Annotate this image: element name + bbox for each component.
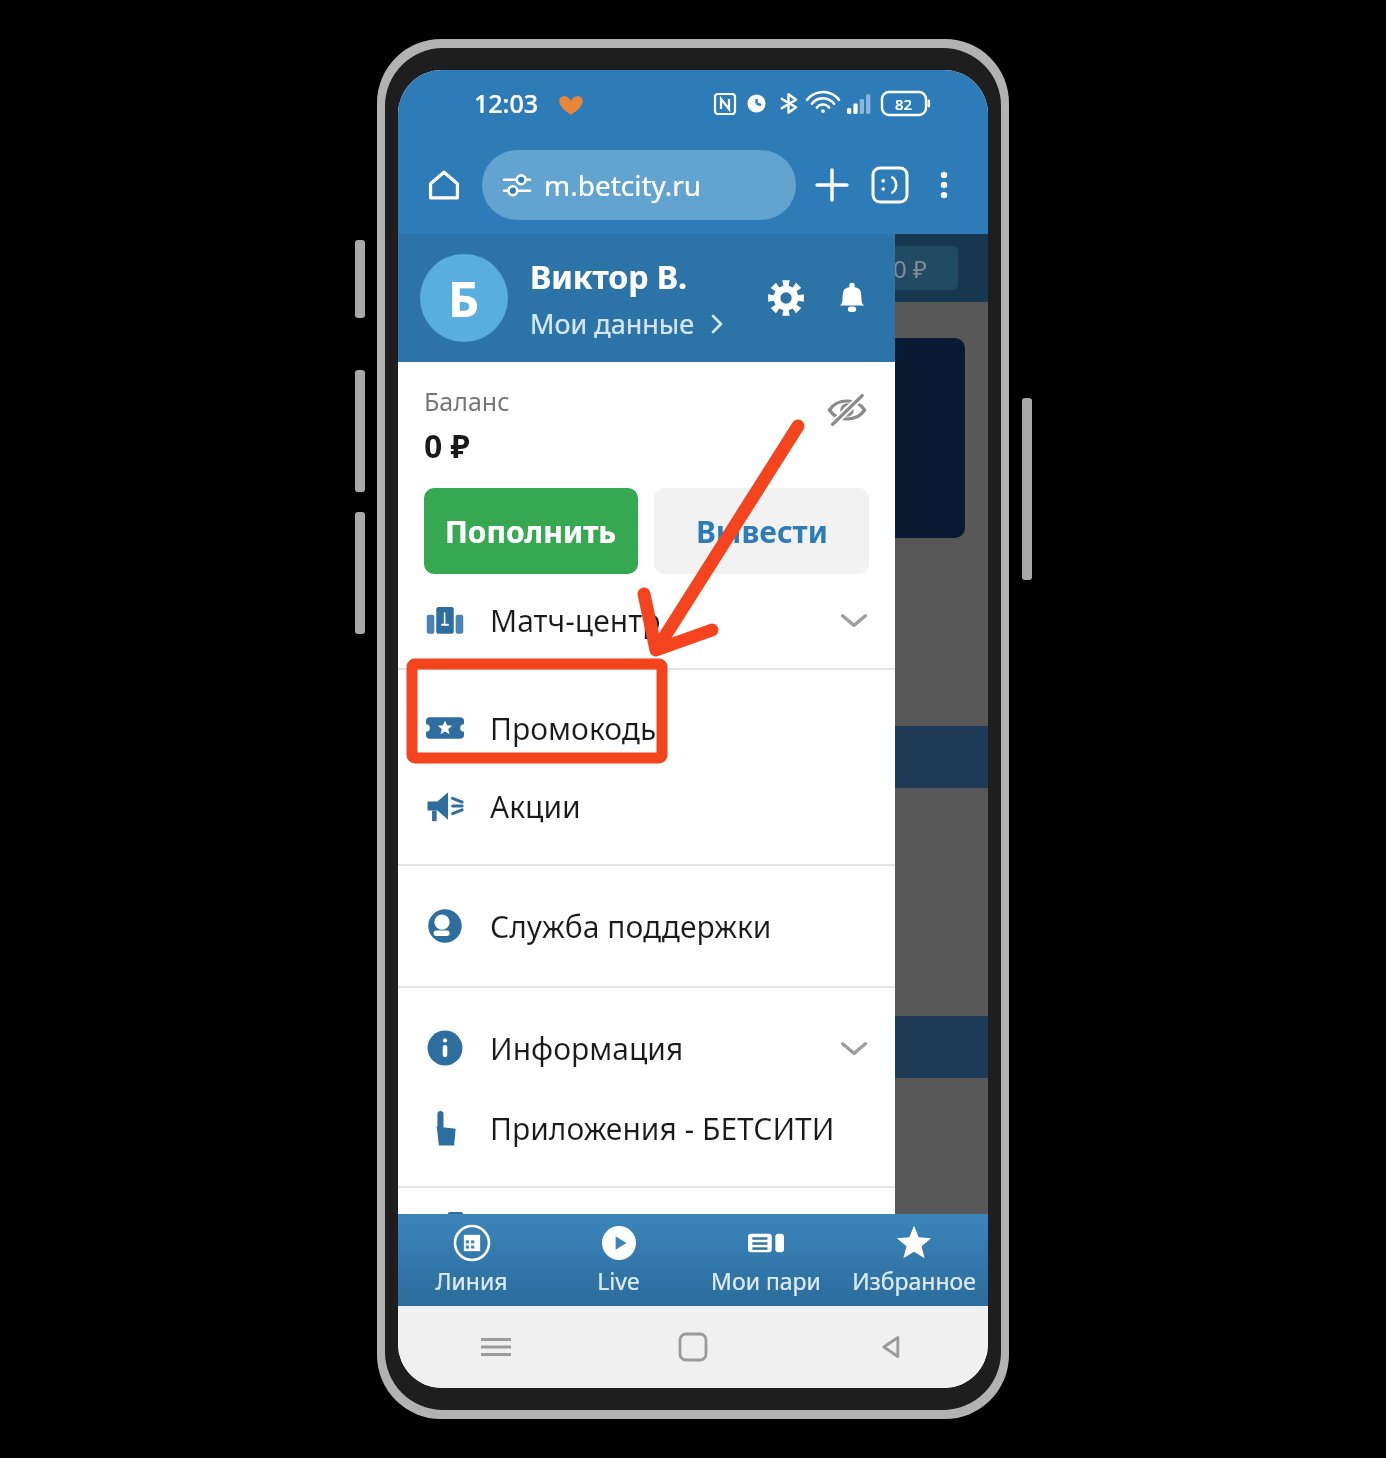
staticText: Линия	[435, 1265, 508, 1296]
button[interactable]: m.betcity.ru	[482, 150, 796, 220]
staticText: Матч-центр	[490, 600, 661, 641]
staticText: 0 ₽	[424, 424, 470, 468]
staticText: Виктор В.	[530, 255, 687, 299]
button[interactable]: Settings	[757, 269, 815, 327]
button[interactable]: Промокоды	[398, 702, 895, 754]
button[interactable]: Вывести	[654, 488, 869, 574]
staticText: Мои пари	[711, 1265, 821, 1296]
button[interactable]: Tabs	[864, 159, 916, 211]
button[interactable]: New tab	[806, 159, 858, 211]
button[interactable]: Back	[791, 1306, 988, 1388]
button[interactable]: Акции	[398, 780, 895, 832]
button[interactable]: Recents	[398, 1306, 594, 1388]
staticText: Промокоды	[490, 708, 663, 749]
staticText: 1.83	[440, 941, 496, 979]
staticText: Информация	[490, 1028, 684, 1069]
staticText: Избранное	[852, 1265, 976, 1296]
button[interactable]: Пополнить	[424, 488, 638, 574]
button[interactable]: Hide balance	[817, 380, 877, 440]
staticText: ve-пари	[404, 678, 514, 715]
staticText: 53	[452, 1241, 485, 1279]
button[interactable]: Live	[545, 1214, 692, 1306]
staticText: m.betcity.ru	[544, 166, 702, 204]
staticText: Пополнить	[445, 511, 617, 552]
button[interactable]: Информация	[398, 1022, 895, 1074]
button[interactable]: Служба поддержки	[398, 900, 895, 952]
button[interactable]: More options	[920, 161, 968, 209]
button[interactable]: Notifications	[823, 269, 881, 327]
staticText: 82	[895, 94, 913, 114]
button[interactable]: Линия	[398, 1214, 545, 1306]
button[interactable]: Б	[398, 234, 895, 362]
staticText: 0 ₽	[893, 252, 927, 285]
staticText: Б	[448, 266, 480, 331]
button[interactable]: Матч-центр	[398, 594, 895, 646]
staticText: Акции	[490, 786, 581, 827]
staticText: Служба поддержки	[490, 906, 772, 947]
button[interactable]: Приложения - БЕТСИТИ	[398, 1102, 895, 1154]
button[interactable]: Избранное	[840, 1214, 988, 1306]
staticText: Live	[597, 1265, 640, 1296]
button[interactable]: Home	[594, 1306, 791, 1388]
staticText: Мои данные	[530, 305, 695, 342]
staticText: Приложения - БЕТСИТИ	[490, 1108, 835, 1149]
staticText: Баланс	[424, 384, 510, 418]
button[interactable]: Мои пари	[692, 1214, 840, 1306]
staticText: 12:03	[474, 86, 539, 120]
staticText: 4.30	[458, 490, 518, 531]
staticText: Вывести	[696, 511, 828, 552]
button[interactable]: Home	[418, 159, 470, 211]
